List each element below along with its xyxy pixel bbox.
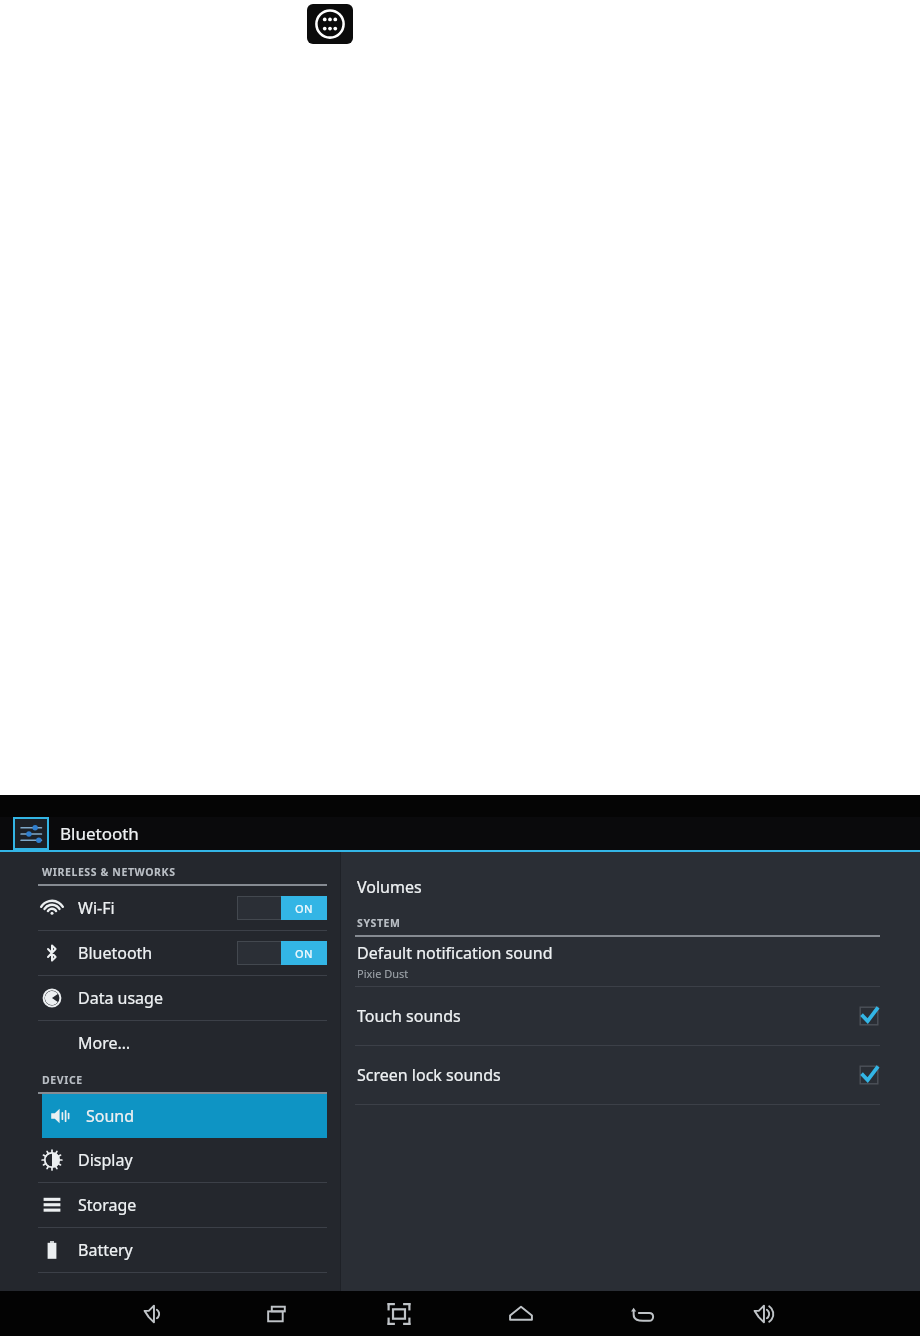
button[interactable]: Screenshot xyxy=(372,1291,426,1336)
staticText: Pixie Dust xyxy=(357,966,409,981)
staticText: Volumes xyxy=(357,876,422,898)
staticText: Storage xyxy=(78,1194,137,1216)
button[interactable]: Touch sounds xyxy=(357,987,880,1045)
staticText: ON xyxy=(295,946,314,961)
button[interactable]: Settings xyxy=(13,817,49,850)
button[interactable]: Storage xyxy=(42,1183,327,1227)
button[interactable]: Home xyxy=(494,1291,548,1336)
button[interactable]: Volume down xyxy=(128,1291,182,1336)
staticText: Data usage xyxy=(78,987,163,1009)
button[interactable]: ON xyxy=(237,895,327,921)
button[interactable]: Screen lock sounds xyxy=(357,1046,880,1104)
button[interactable]: Recent apps xyxy=(250,1291,304,1336)
button[interactable]: Battery xyxy=(42,1228,327,1272)
button[interactable]: ON xyxy=(237,940,327,966)
staticText: Bluetooth xyxy=(78,942,153,964)
staticText: Display xyxy=(78,1149,133,1171)
staticText: SYSTEM xyxy=(357,916,401,930)
staticText: WIRELESS & NETWORKS xyxy=(42,865,176,879)
button[interactable]: Display xyxy=(42,1138,327,1182)
staticText: Battery xyxy=(78,1239,133,1261)
staticText: Bluetooth xyxy=(60,822,139,845)
button[interactable]: Data usage xyxy=(42,976,327,1020)
staticText: ON xyxy=(295,901,314,916)
button[interactable]: Wi-Fi xyxy=(42,886,327,930)
button[interactable]: Volume up xyxy=(738,1291,792,1336)
staticText: Touch sounds xyxy=(357,1005,461,1027)
staticText: Default notification sound xyxy=(357,942,553,964)
staticText: DEVICE xyxy=(42,1073,83,1087)
button[interactable]: Back xyxy=(616,1291,670,1336)
button[interactable]: Bluetooth xyxy=(42,931,327,975)
button[interactable]: Sound xyxy=(42,1094,327,1138)
button[interactable]: More… xyxy=(42,1021,327,1065)
staticText: More… xyxy=(78,1032,131,1054)
staticText: Wi-Fi xyxy=(78,897,115,919)
button[interactable]: All apps xyxy=(307,4,353,44)
staticText: Screen lock sounds xyxy=(357,1064,501,1086)
button[interactable]: Default notification sound xyxy=(357,937,880,986)
button[interactable]: Volumes xyxy=(357,870,880,904)
staticText: Sound xyxy=(86,1105,135,1127)
